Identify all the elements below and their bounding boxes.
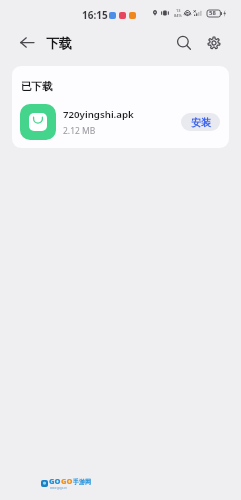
staticText: GO — [49, 476, 61, 486]
staticText: 720yingshi.apk — [63, 108, 134, 121]
staticText: 84% — [174, 13, 182, 18]
button[interactable]: 720yingshi.apk — [12, 100, 229, 144]
button[interactable]: Back — [13, 29, 40, 56]
staticText: 下载 — [46, 35, 72, 51]
staticText: 2.12 MB — [63, 125, 96, 137]
staticText: 13 — [176, 8, 181, 13]
button[interactable]: Settings — [202, 31, 226, 55]
button[interactable]: 安装 — [181, 113, 220, 131]
staticText: 安装 — [191, 116, 211, 129]
staticText: GO — [61, 476, 73, 486]
staticText: 58 — [209, 9, 216, 17]
staticText: 手游网 — [73, 478, 91, 486]
staticText: 已下载 — [21, 80, 53, 93]
staticText: www.gogo.cn — [50, 486, 67, 490]
staticText: 16:15 — [82, 8, 108, 22]
button[interactable]: Search — [172, 31, 196, 55]
